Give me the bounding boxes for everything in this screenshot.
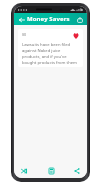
- button[interactable]: Shopping bag: [75, 14, 84, 25]
- staticText: $0: [22, 32, 27, 37]
- button[interactable]: $0: [18, 29, 83, 67]
- button[interactable]: Calculator: [45, 165, 57, 177]
- staticText: Money Savers: [27, 15, 70, 23]
- staticText: Lawsuits have been filed against Naked j…: [22, 42, 78, 67]
- button[interactable]: Favorite: [72, 32, 80, 40]
- button[interactable]: Shuffle: [18, 165, 30, 177]
- button[interactable]: Share: [71, 165, 83, 177]
- button[interactable]: Back: [17, 14, 26, 25]
